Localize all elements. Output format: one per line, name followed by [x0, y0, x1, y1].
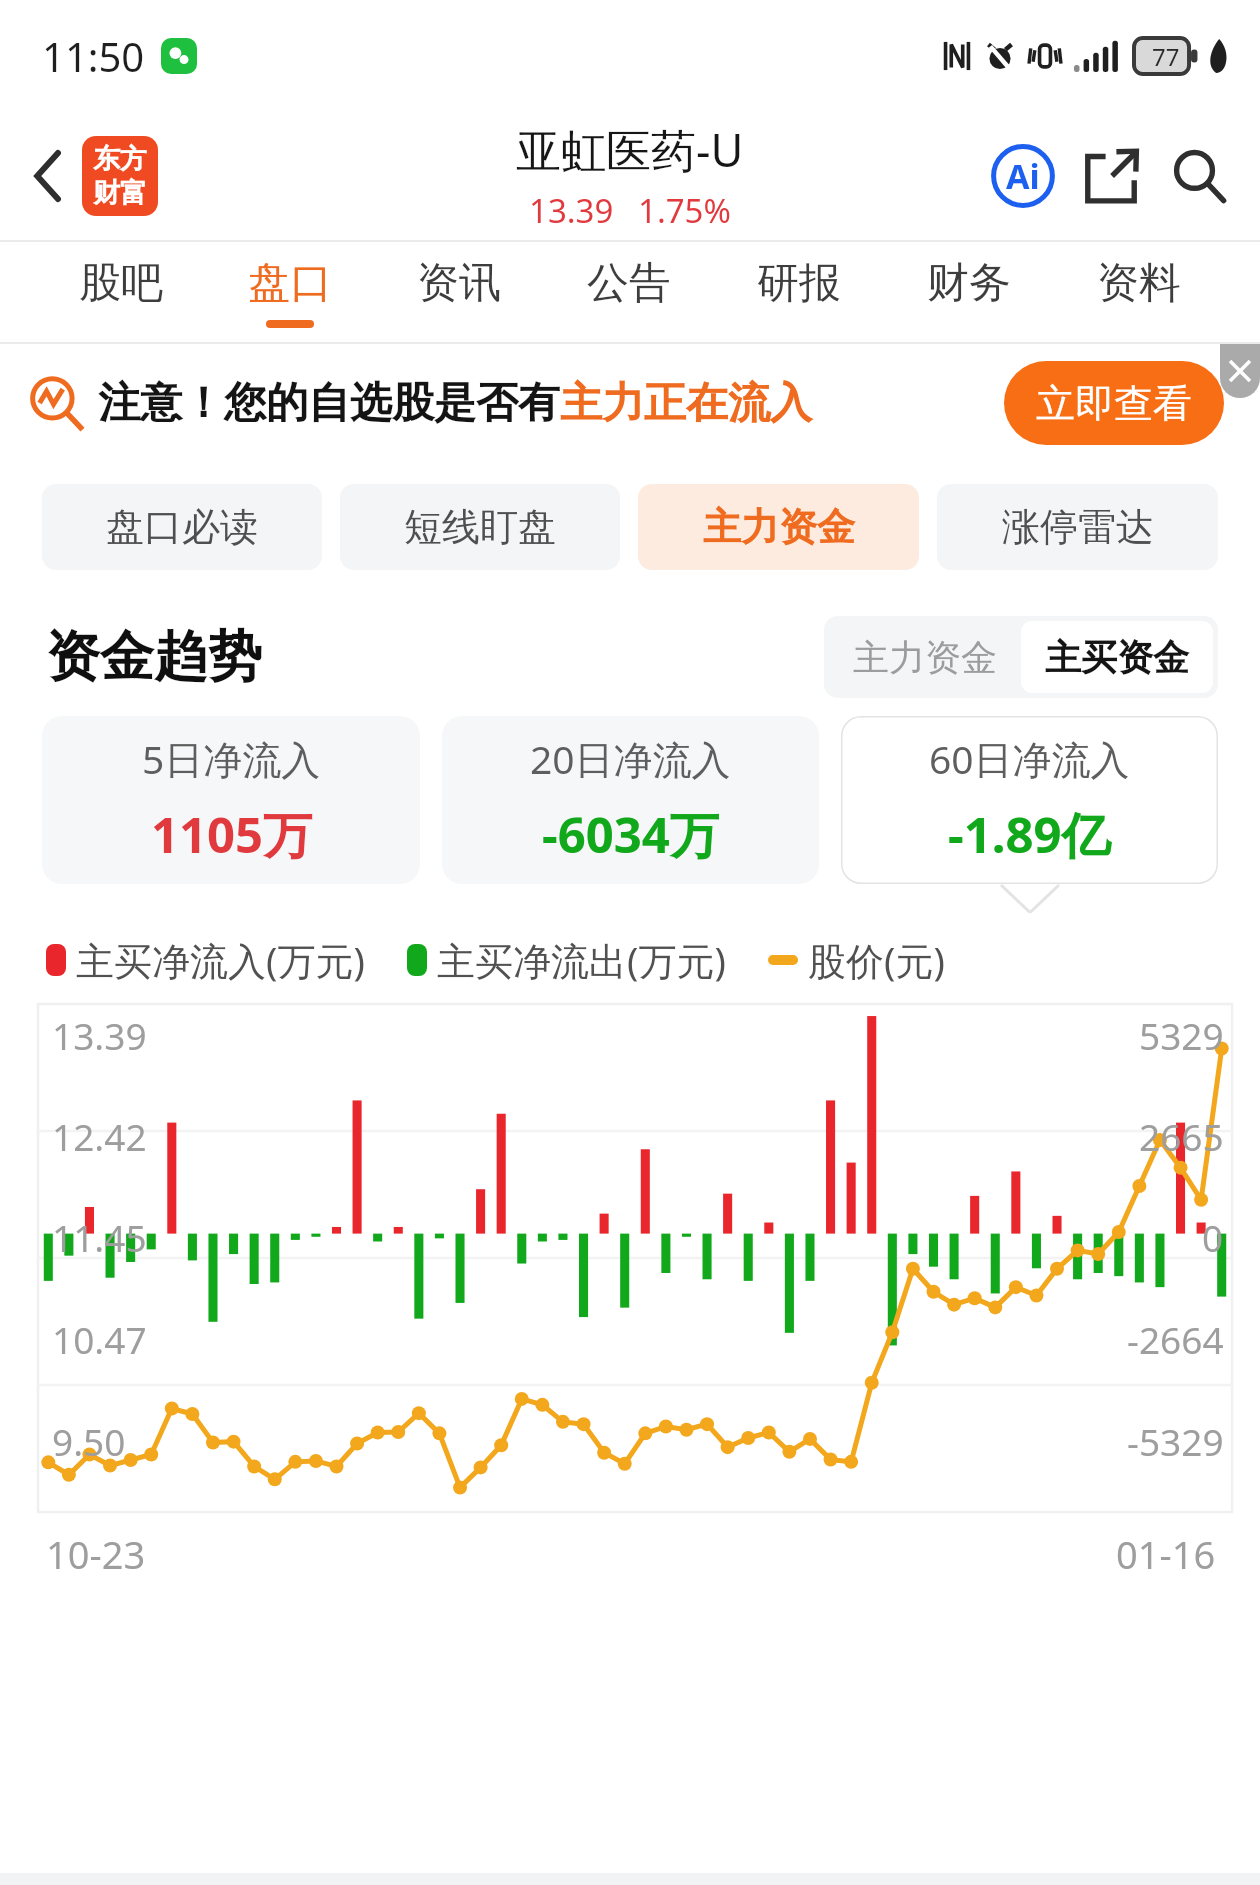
button[interactable]: 主力资金: [853, 621, 997, 693]
staticText: 2665: [1139, 1111, 1224, 1161]
staticText: 资讯: [417, 257, 501, 310]
staticText: 0: [1202, 1212, 1224, 1262]
staticText: 主力资金: [703, 503, 855, 551]
staticText: 77: [1152, 40, 1180, 73]
staticText: -6034万: [542, 801, 719, 868]
button[interactable]: 盘口: [205, 242, 374, 342]
staticText: 亚虹医药-U: [516, 119, 744, 180]
staticText: 12.42: [52, 1111, 147, 1161]
button[interactable]: 立即查看: [1004, 361, 1224, 445]
staticText: 资料: [1097, 257, 1181, 310]
button[interactable]: 财务: [884, 242, 1054, 342]
staticText: 公告: [587, 257, 671, 310]
staticText: 注意！您的自选股是否有: [98, 377, 560, 430]
button[interactable]: 主买净流入(万元): [46, 934, 365, 986]
button[interactable]: 注意！您的自选股是否有: [28, 344, 1224, 462]
staticText: 股价(元): [808, 934, 945, 986]
staticText: 涨停雷达: [1002, 503, 1154, 551]
staticText: 股吧: [79, 257, 163, 310]
button[interactable]: Share: [1072, 137, 1150, 215]
button[interactable]: East Money: [82, 136, 158, 216]
button[interactable]: 主力资金: [638, 484, 919, 570]
button[interactable]: 5日净流入: [42, 716, 420, 884]
staticText: 主力正在流入: [560, 377, 812, 430]
button[interactable]: 涨停雷达: [937, 484, 1218, 570]
staticText: -5329: [1127, 1416, 1224, 1461]
staticText: -1.89亿: [948, 801, 1111, 868]
button[interactable]: 盘口必读: [42, 484, 322, 570]
staticText: 13.39: [529, 188, 614, 233]
staticText: 主买净流入(万元): [76, 934, 365, 986]
button[interactable]: 主买净流出(万元): [407, 934, 726, 986]
button[interactable]: 短线盯盘: [340, 484, 620, 570]
staticText: 10.47: [52, 1314, 147, 1364]
button[interactable]: 主买资金: [1045, 621, 1189, 693]
staticText: 盘口: [248, 257, 332, 310]
staticText: 研报: [757, 257, 841, 310]
button[interactable]: 资讯: [374, 242, 544, 342]
button[interactable]: 研报: [714, 242, 884, 342]
staticText: 11.45: [52, 1212, 147, 1262]
staticText: 5329: [1139, 1010, 1224, 1060]
staticText: 1.75%: [638, 188, 731, 233]
staticText: 主买资金: [1045, 635, 1189, 680]
button[interactable]: Search: [1160, 137, 1238, 215]
staticText: 10-23: [46, 1528, 146, 1580]
staticText: 1105万: [151, 801, 313, 868]
button[interactable]: 资料: [1054, 242, 1224, 342]
staticText: 财富: [93, 176, 147, 210]
staticText: Ai: [1006, 153, 1040, 199]
staticText: 主力资金: [853, 635, 997, 680]
button[interactable]: 20日净流入: [442, 716, 819, 884]
staticText: 5日净流入: [142, 732, 321, 785]
button[interactable]: AI assistant: [984, 137, 1062, 215]
staticText: 13.39: [52, 1010, 147, 1060]
button[interactable]: 公告: [544, 242, 714, 342]
staticText: -2664: [1127, 1314, 1224, 1364]
staticText: 立即查看: [1036, 379, 1192, 428]
staticText: 60日净流入: [929, 732, 1130, 785]
staticText: 01-16: [1116, 1528, 1216, 1580]
staticText: 9.50: [52, 1416, 126, 1461]
staticText: 东方: [93, 142, 147, 176]
staticText: 资金趋势: [46, 623, 262, 691]
staticText: 主买净流出(万元): [437, 934, 726, 986]
button[interactable]: 股吧: [36, 242, 205, 342]
button[interactable]: Back: [12, 139, 86, 213]
button[interactable]: Close ad: [1220, 344, 1260, 398]
staticText: 11:50: [42, 29, 145, 83]
staticText: 短线盯盘: [404, 503, 556, 551]
staticText: 20日净流入: [530, 732, 731, 785]
staticText: 财务: [927, 257, 1011, 310]
button[interactable]: 60日净流入: [841, 716, 1218, 884]
button[interactable]: 股价(元): [768, 934, 945, 986]
staticText: 盘口必读: [106, 503, 258, 551]
